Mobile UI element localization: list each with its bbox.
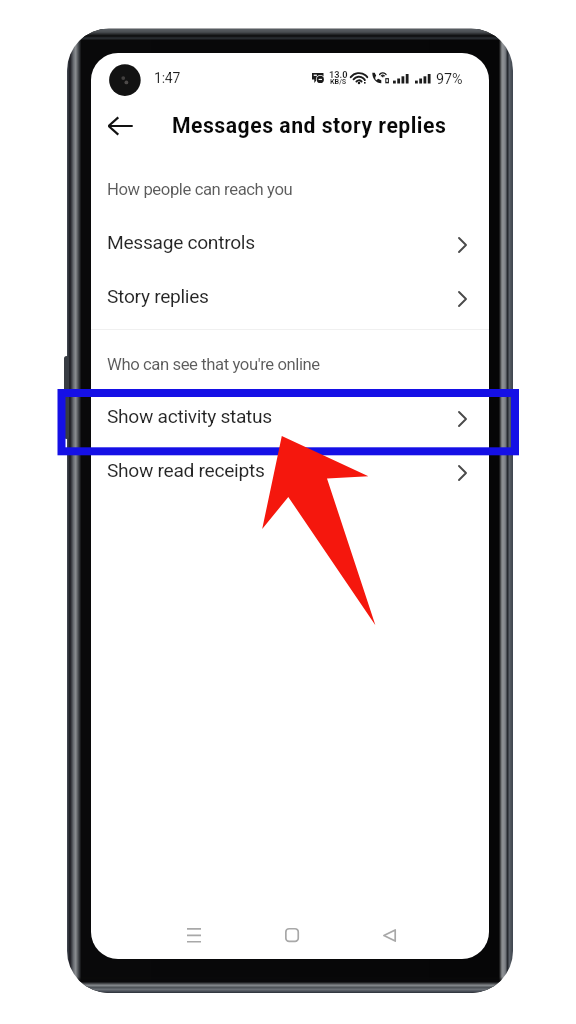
button[interactable]: Show read receipts [91,443,489,497]
staticText: Message controls [107,231,255,254]
button[interactable]: Story replies [91,269,489,323]
button[interactable]: Message controls [91,215,489,269]
staticText: Show activity status [107,405,272,428]
button[interactable]: Show activity status [91,389,489,443]
staticText: 97% [436,71,463,88]
staticText: 13.0 [329,69,348,80]
staticText: Story replies [107,285,209,308]
staticText: Messages and story replies [172,113,447,138]
staticText: Show read receipts [107,459,265,482]
button[interactable]: Recent apps [177,918,211,952]
button[interactable]: Back [98,111,144,141]
staticText: KB/S [330,77,347,85]
staticText: How people can reach you [107,180,293,200]
staticText: Who can see that you're online [107,355,320,375]
button[interactable]: Home [275,918,309,952]
button[interactable]: Back [372,918,406,952]
staticText: 1:47 [154,70,181,86]
